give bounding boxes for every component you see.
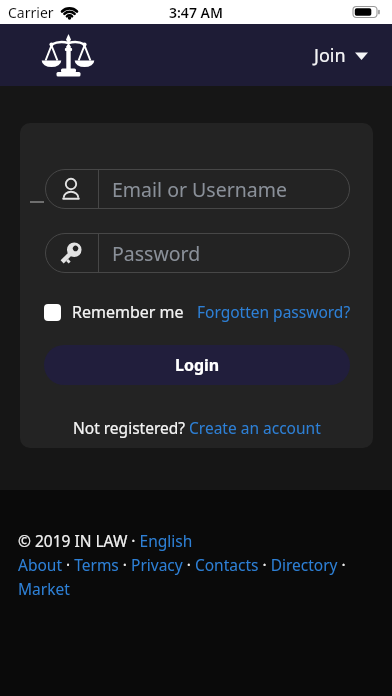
staticText: 3:47 AM <box>169 3 223 22</box>
button[interactable]: Join <box>314 43 368 68</box>
staticText: Join <box>314 43 346 68</box>
button[interactable]: Remember me <box>44 301 184 323</box>
button[interactable]: Login <box>44 345 350 385</box>
button[interactable]: Not registered? Create an account <box>73 417 321 438</box>
button[interactable]: About · Terms · Privacy · Contacts · Dir… <box>18 554 346 575</box>
staticText: Carrier <box>8 3 54 22</box>
button[interactable]: Email or Username <box>45 169 350 209</box>
staticText: Login <box>175 354 220 376</box>
staticText: Password <box>112 240 201 267</box>
button[interactable]: Market <box>18 578 70 599</box>
staticText: Email or Username <box>112 176 287 203</box>
button[interactable]: Forgotten password? <box>197 301 351 322</box>
button[interactable]: © 2019 IN LAW · English <box>18 530 193 551</box>
button[interactable]: Password <box>45 233 350 273</box>
button[interactable] <box>45 32 91 78</box>
staticText: Remember me <box>72 301 184 323</box>
